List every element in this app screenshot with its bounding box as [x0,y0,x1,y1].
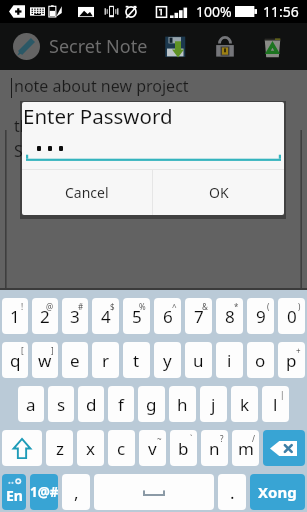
staticText: c [117,437,126,460]
button[interactable]: j [200,386,227,422]
button[interactable]: f [108,386,134,422]
staticText: i [227,349,232,372]
staticText: ^ [172,301,177,312]
staticText: ] [51,345,54,356]
staticText: + [296,345,301,356]
button[interactable]: Cancel [22,170,152,215]
button[interactable]: Delete [262,35,283,59]
button[interactable]: c [108,430,135,466]
button[interactable]: 1 [2,298,28,334]
button[interactable]: r [92,342,119,378]
button[interactable]: b [170,430,197,466]
staticText: , [74,481,79,504]
button[interactable]: u [185,342,212,378]
button[interactable]: App icon [13,33,40,60]
staticText: h [177,393,188,416]
button[interactable]: Language [2,474,26,510]
staticText: q [10,349,21,372]
staticText: 8 [225,305,235,328]
staticText: o [255,349,266,372]
button[interactable]: 9 [247,298,274,334]
button[interactable]: 2 [32,298,58,334]
staticText: 7 [194,305,204,328]
button[interactable]: 4 [92,298,119,334]
staticText: 5 [132,305,142,328]
button[interactable]: k [231,386,258,422]
button[interactable]: 7 [185,298,212,334]
staticText: u [193,349,204,372]
staticText: @ [46,301,54,312]
staticText: . [230,481,235,504]
staticText: | [280,389,285,400]
button[interactable]: z [46,430,73,466]
staticText: k [240,393,250,416]
button[interactable]: 5 [123,298,150,334]
staticText: 3 [70,305,80,328]
staticText: ? [220,433,224,444]
staticText: & [202,301,208,312]
button[interactable]: Backspace [263,430,305,466]
button[interactable]: i [216,342,243,378]
staticText: Secret Note [49,34,148,59]
staticText: 1@# [30,483,58,501]
staticText: a [26,393,36,416]
button[interactable]: m [232,430,259,466]
button[interactable]: y [154,342,181,378]
staticText: r [102,349,110,372]
staticText: 0 [287,305,297,328]
staticText: S [14,140,23,162]
staticText: b [178,437,189,460]
staticText: 100% [196,2,232,21]
staticText: d [86,393,97,416]
staticText: [ [21,345,24,356]
staticText: j [211,393,216,416]
staticText: z [56,437,64,460]
button[interactable]: , [62,474,90,510]
button[interactable]: e [62,342,88,378]
button[interactable]: 3 [62,298,88,334]
button[interactable]: a [18,386,44,422]
staticText: l [273,393,278,416]
staticText: Enter Password [23,102,173,130]
button[interactable]: s [48,386,74,422]
button[interactable]: Space [94,474,214,510]
button[interactable]: p [278,342,305,378]
staticText: ) [298,301,301,312]
staticText: 6 [163,305,173,328]
button[interactable]: Done [250,474,305,510]
button[interactable]: o [247,342,274,378]
staticText: m [238,437,254,460]
button[interactable]: . [218,474,246,510]
staticText: x [86,437,95,460]
staticText: / [252,433,255,444]
button[interactable]: q [2,342,28,378]
button[interactable]: w [32,342,58,378]
button[interactable]: l [262,386,289,422]
staticText: % [139,301,146,312]
button[interactable]: OK [153,170,284,215]
button[interactable]: x [77,430,104,466]
staticText: # [78,301,84,312]
staticText: 1 [10,305,20,328]
button[interactable]: Lock [214,35,236,59]
button[interactable]: n [201,430,228,466]
button[interactable]: v [139,430,166,466]
staticText: y [163,349,172,372]
button[interactable]: g [138,386,165,422]
button[interactable]: 8 [216,298,243,334]
button[interactable]: t [123,342,150,378]
staticText: th [14,115,30,137]
button[interactable]: 0 [278,298,305,334]
button[interactable]: d [78,386,104,422]
staticText: ( [267,301,270,312]
button[interactable]: Shift [2,430,42,466]
staticText: 11:56 [263,2,299,21]
staticText: $ [110,301,115,312]
button[interactable]: h [169,386,196,422]
button[interactable]: Save [164,34,189,60]
staticText: g [146,393,157,416]
staticText: note about new project [14,75,189,97]
staticText: 4 [101,305,111,328]
button[interactable]: 6 [154,298,181,334]
button[interactable]: Symbols [30,474,58,510]
